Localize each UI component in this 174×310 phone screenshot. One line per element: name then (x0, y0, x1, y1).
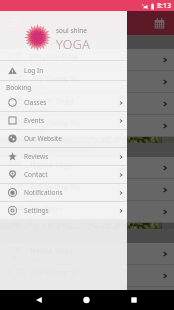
staticText: AM (11, 61, 19, 68)
staticText: Taylor (30, 127, 46, 134)
staticText: Settings (24, 206, 118, 215)
button[interactable]: Events (0, 112, 127, 129)
staticText: Jamie (30, 83, 45, 90)
staticText: AM (11, 127, 19, 134)
button[interactable]: 12:00 (0, 201, 174, 223)
button[interactable]: Home (58, 290, 116, 310)
button[interactable]: 9:30 (0, 157, 174, 179)
staticText: 7:30 (8, 73, 22, 83)
button[interactable]: 10:00 (0, 179, 174, 201)
staticText: 265 Young St. (30, 117, 80, 127)
staticText: Hatha Yoga (30, 159, 74, 169)
staticText: Level 2 Aerial (30, 289, 80, 299)
staticText: Events (24, 116, 118, 125)
button[interactable]: Notifications (0, 184, 127, 201)
button[interactable]: Classes (0, 94, 127, 111)
staticText: 10:00 (6, 181, 24, 191)
button[interactable]: 10:00 (0, 265, 174, 287)
button[interactable]: Back (0, 290, 58, 310)
staticText: Drew (30, 299, 44, 306)
button[interactable]: 7:30 (0, 71, 174, 93)
staticText: 9:30 (8, 159, 22, 169)
button[interactable]: Calendar (151, 15, 167, 31)
staticText: AM (11, 83, 19, 90)
staticText: soul shine (56, 26, 87, 35)
staticText: Classes (24, 98, 118, 107)
staticText: Morgan (30, 105, 51, 112)
staticText: 6:00 (8, 51, 22, 61)
staticText: 265 Young St. (30, 181, 80, 191)
staticText: AM (11, 191, 19, 198)
button[interactable]: 9:00 (0, 93, 174, 115)
staticText: Casey (30, 169, 45, 176)
staticText: 8:13 (157, 1, 171, 11)
button[interactable]: Recents (116, 290, 174, 310)
staticText: PM (11, 213, 19, 220)
staticText: 9:00 (8, 95, 22, 105)
staticText: Notifications (24, 188, 118, 197)
staticText: Yin Yoga (30, 203, 63, 213)
button[interactable]: 6:00 (0, 49, 174, 71)
staticText: Power Yoga (30, 95, 74, 105)
button[interactable]: Log In (0, 61, 127, 80)
staticText: Booking (6, 83, 32, 92)
button[interactable]: Contact (0, 166, 127, 183)
staticText: YOGA (56, 36, 91, 53)
staticText: Contact (24, 170, 118, 179)
button[interactable]: 9:30 (0, 243, 174, 265)
staticText: Log In (24, 66, 118, 75)
staticText: Reviews (24, 152, 118, 161)
staticText: AM (11, 105, 19, 112)
staticText: AM (11, 169, 19, 176)
staticText: 265 Young St. (30, 73, 80, 83)
staticText: 12:00 (6, 289, 24, 299)
staticText: Riley (30, 191, 43, 198)
button[interactable]: 12:00 (0, 287, 174, 309)
staticText: Our Website (24, 134, 118, 143)
staticText: Vinyasa Flow (30, 51, 79, 61)
button[interactable]: Reviews (0, 148, 127, 165)
staticText: Jordan (30, 213, 47, 220)
button[interactable]: Our Website (0, 130, 127, 147)
button[interactable]: Settings (0, 202, 127, 219)
staticText: TUESDAY, MARCH 3 (34, 40, 85, 47)
staticText: 10:30 (6, 117, 24, 127)
staticText: 12:00 (6, 203, 24, 213)
button[interactable]: 10:30 (0, 115, 174, 137)
